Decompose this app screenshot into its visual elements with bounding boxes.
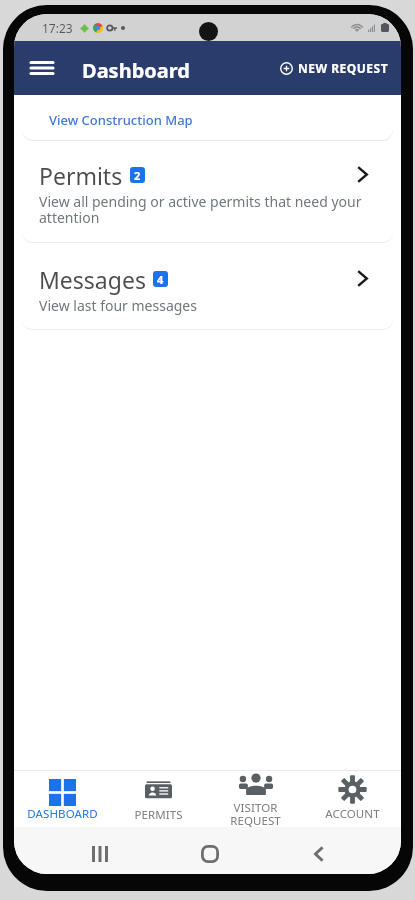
staticText: View last four messages: [39, 296, 197, 315]
staticText: Messages: [39, 264, 146, 295]
staticText: View Construction Map: [49, 111, 193, 129]
staticText: 17:23: [42, 20, 73, 36]
button[interactable]: Permits: [22, 152, 393, 242]
staticText: NEW REQUEST: [298, 60, 389, 76]
staticText: DASHBOARD: [27, 806, 98, 822]
staticText: 2: [134, 168, 141, 183]
staticText: Dashboard: [82, 57, 190, 84]
button[interactable]: Open navigation menu: [22, 48, 62, 88]
staticText: PERMITS: [134, 807, 183, 823]
button[interactable]: DASHBOARD: [14, 771, 110, 827]
button[interactable]: Home: [174, 830, 246, 874]
button[interactable]: View Construction Map: [22, 95, 393, 140]
staticText: 4: [157, 272, 164, 287]
staticText: Permits: [39, 160, 123, 191]
button[interactable]: Messages: [22, 256, 393, 329]
staticText: View all pending or active permits that …: [39, 192, 362, 227]
button[interactable]: ACCOUNT: [304, 771, 401, 827]
button[interactable]: VISITOR REQUEST: [207, 771, 304, 827]
button[interactable]: NEW REQUEST: [272, 50, 397, 86]
button[interactable]: Back: [283, 830, 355, 874]
staticText: ACCOUNT: [325, 806, 380, 822]
button[interactable]: PERMITS: [110, 771, 207, 827]
button[interactable]: Recent apps: [64, 830, 136, 874]
staticText: VISITOR REQUEST: [230, 800, 281, 827]
